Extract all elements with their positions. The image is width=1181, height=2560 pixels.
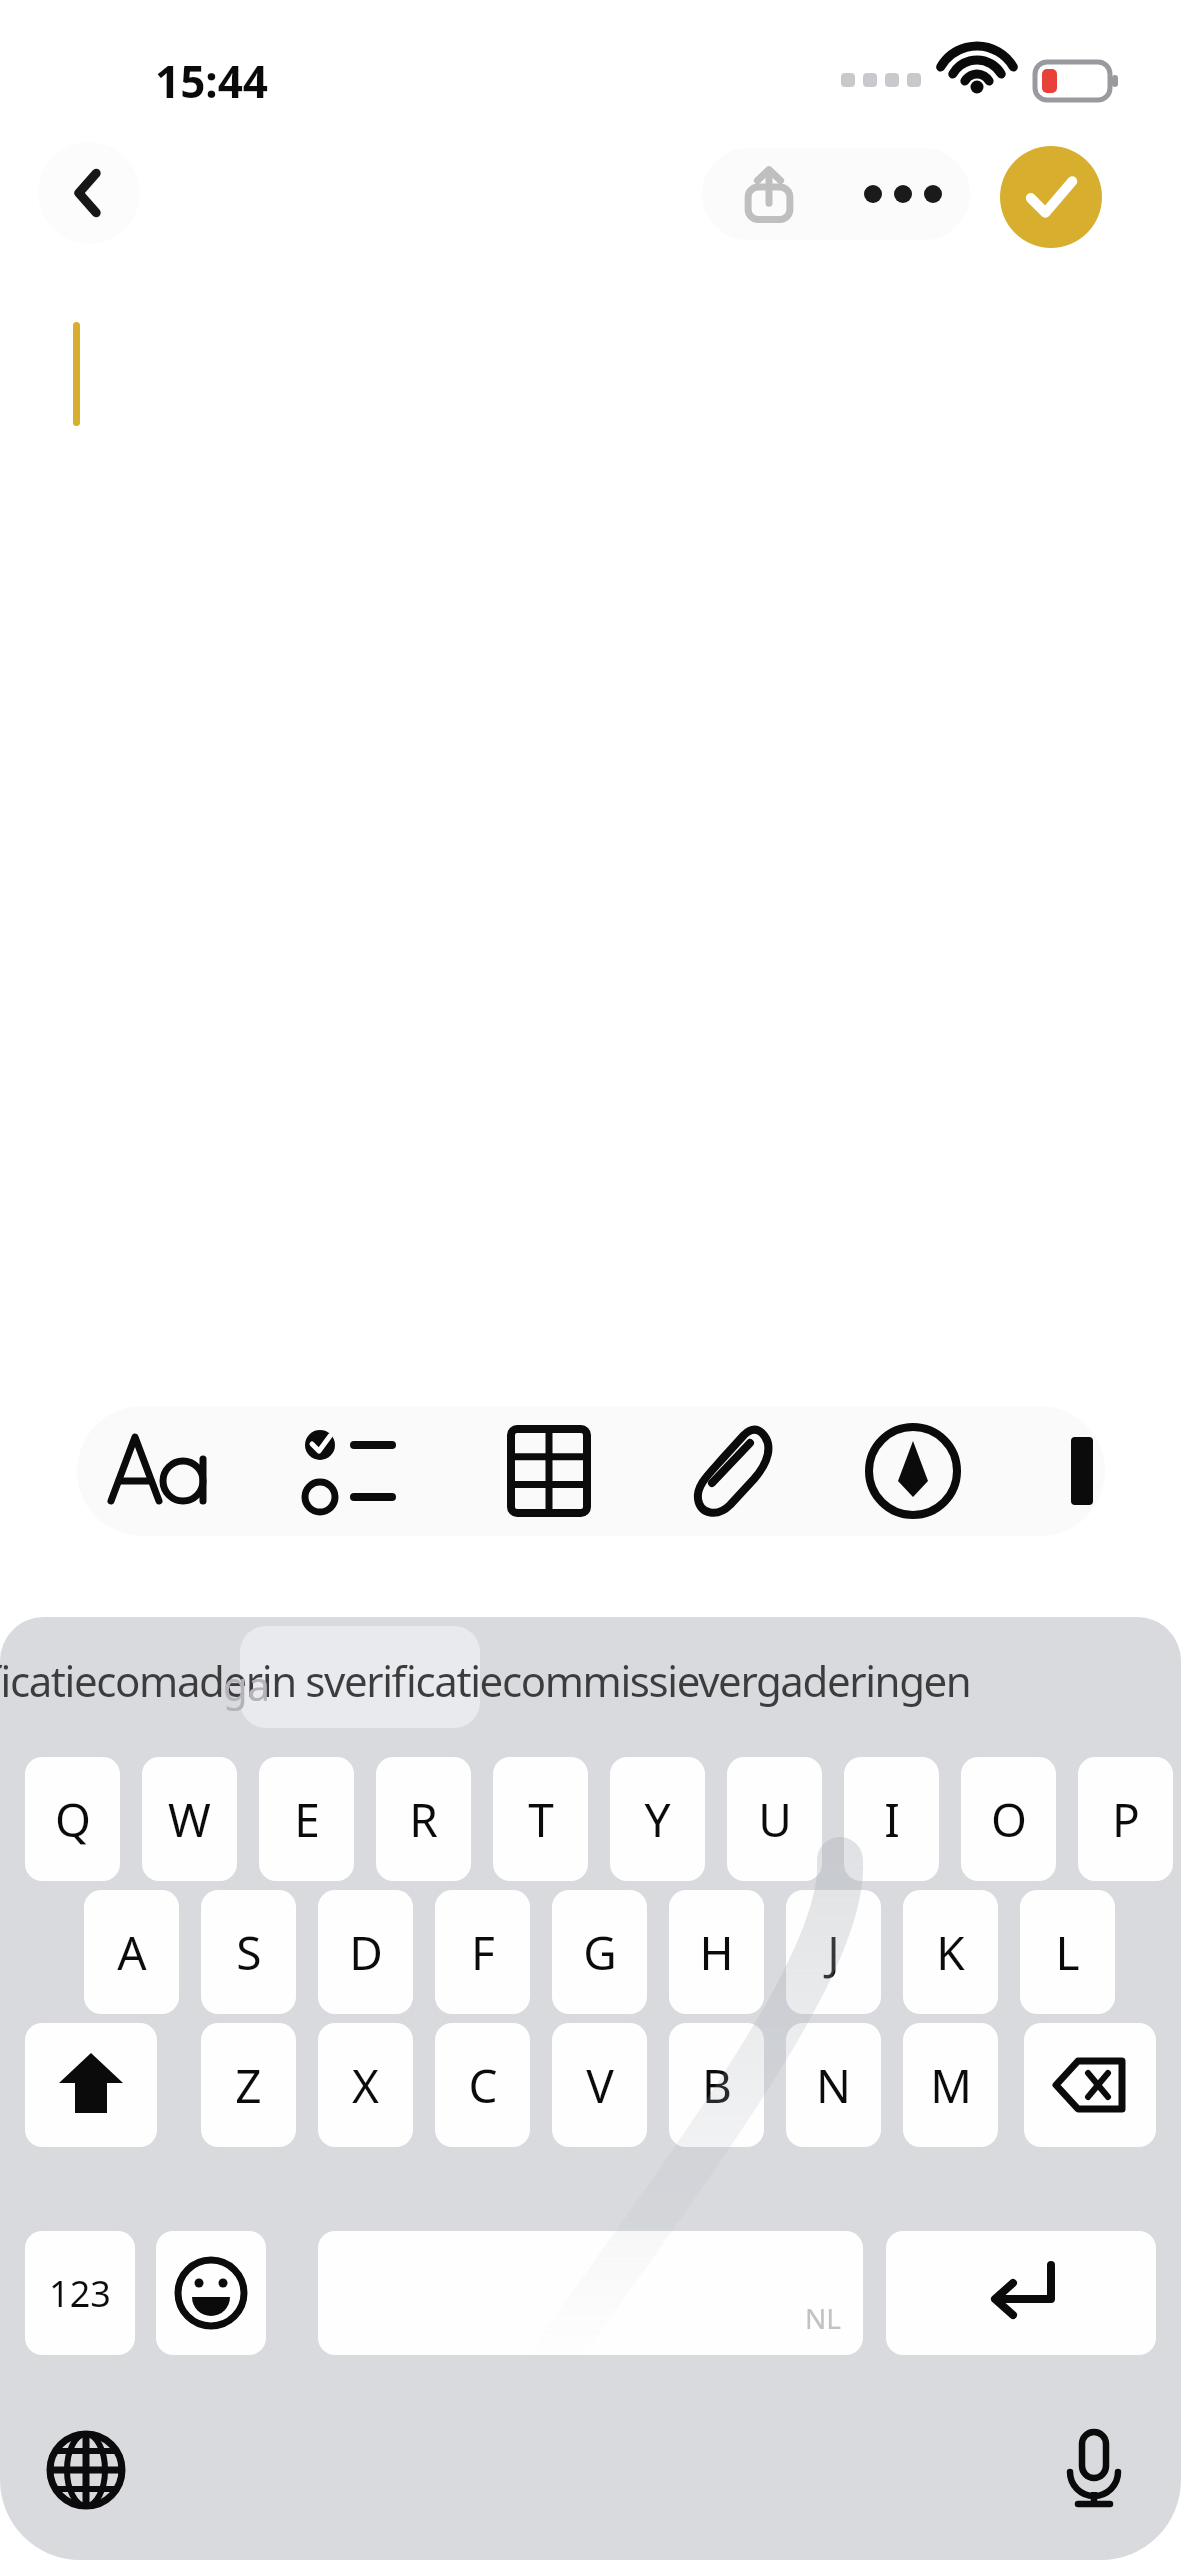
button[interactable]: W [142,1757,237,1881]
staticText: Z [235,2054,262,2117]
button[interactable]: E [259,1757,354,1881]
button[interactable]: Return [886,2231,1156,2355]
button[interactable]: L [1020,1890,1115,2014]
button[interactable]: Done [1000,146,1102,248]
button[interactable]: A [84,1890,179,2014]
button[interactable]: 123 [25,2231,135,2355]
staticText: H [699,1921,734,1984]
staticText: G [583,1921,617,1984]
button[interactable]: D [318,1890,413,2014]
button[interactable]: Change keyboard language [42,2426,130,2514]
staticText: NL [805,2299,841,2337]
button[interactable]: Q [25,1757,120,1881]
staticText: I [884,1788,900,1851]
staticText: B [702,2054,732,2117]
staticText: P [1112,1788,1140,1851]
staticText: ficatiecomaderin sverificatiecommissieve… [0,1652,1167,1709]
staticText: ga [223,1658,271,1712]
button[interactable]: U [727,1757,822,1881]
button[interactable]: More options [836,148,970,240]
staticText: V [586,2054,614,2117]
button[interactable]: H [669,1890,764,2014]
button[interactable]: Emoji [156,2231,266,2355]
button[interactable]: G [552,1890,647,2014]
button[interactable]: C [435,2023,530,2147]
button[interactable]: P [1078,1757,1173,1881]
staticText: C [468,2054,498,2117]
staticText: R [409,1788,438,1851]
button[interactable]: F [435,1890,530,2014]
staticText: L [1055,1921,1080,1984]
button[interactable]: Backspace [1024,2023,1156,2147]
staticText: S [236,1921,262,1984]
staticText: D [349,1921,383,1984]
button[interactable]: X [318,2023,413,2147]
button[interactable]: M [903,2023,998,2147]
button[interactable]: T [493,1757,588,1881]
staticText: Q [55,1788,91,1851]
button[interactable]: Share [702,148,836,240]
button[interactable]: Y [610,1757,705,1881]
button[interactable]: K [903,1890,998,2014]
staticText: K [936,1921,965,1984]
button[interactable]: Space [318,2231,863,2355]
button[interactable]: Z [201,2023,296,2147]
button[interactable]: Back [38,142,140,244]
staticText: T [528,1788,554,1851]
staticText: W [168,1788,211,1851]
button[interactable] [240,1626,480,1728]
staticText: A [117,1921,147,1984]
staticText: X [352,2054,379,2117]
button[interactable]: O [961,1757,1056,1881]
button[interactable]: Shift [25,2023,157,2147]
button[interactable]: S [201,1890,296,2014]
staticText: E [294,1788,320,1851]
staticText: N [816,2054,851,2117]
button[interactable]: V [552,2023,647,2147]
button[interactable]: N [786,2023,881,2147]
staticText: U [758,1788,792,1851]
button[interactable]: J [786,1890,881,2014]
staticText: M [930,2054,972,2117]
staticText: 15:44 [155,51,269,111]
button[interactable]: I [844,1757,939,1881]
staticText: J [827,1921,840,1984]
button[interactable]: B [669,2023,764,2147]
button[interactable]: R [376,1757,471,1881]
staticText: Y [644,1788,671,1851]
button[interactable]: Dictate [1050,2426,1138,2514]
staticText: 123 [49,2269,111,2318]
staticText: F [471,1921,495,1984]
staticText: O [991,1788,1027,1851]
